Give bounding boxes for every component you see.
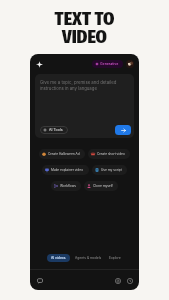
button[interactable]: Create Halloween Ad bbox=[39, 149, 85, 159]
staticText: Create Halloween Ad bbox=[48, 152, 80, 156]
staticText: AI videos bbox=[51, 256, 66, 260]
button[interactable]: Profile bbox=[126, 60, 134, 68]
button[interactable]: Chat bbox=[34, 275, 45, 286]
staticText: Explore bbox=[109, 256, 121, 260]
button[interactable]: Likes bbox=[112, 275, 123, 286]
button[interactable]: Workflows bbox=[51, 181, 81, 191]
button[interactable]: Assistant bbox=[34, 59, 45, 70]
staticText: Generative bbox=[100, 62, 119, 66]
staticText: Workflows bbox=[60, 184, 76, 188]
staticText: Give me a topic, premise and detailed in… bbox=[40, 80, 117, 91]
staticText: TEXT TO VIDEO bbox=[0, 8, 169, 48]
button[interactable]: History bbox=[124, 275, 135, 286]
button[interactable]: AI videos bbox=[47, 254, 70, 262]
staticText: Agents & models bbox=[75, 256, 102, 260]
button[interactable]: Clone myself bbox=[84, 181, 118, 191]
button[interactable]: AI Tools bbox=[40, 126, 68, 134]
button[interactable]: Explore bbox=[107, 254, 123, 262]
staticText: Use my script bbox=[101, 168, 122, 172]
button[interactable]: Create short video bbox=[88, 149, 130, 159]
staticText: AI Tools bbox=[49, 128, 63, 132]
button[interactable]: Agents & models bbox=[73, 254, 104, 262]
staticText: Make explainer video bbox=[51, 168, 84, 172]
button[interactable]: Make explainer video bbox=[42, 165, 89, 175]
button[interactable]: Use my script bbox=[92, 165, 127, 175]
staticText: Clone myself bbox=[93, 184, 113, 188]
staticText: Create short video bbox=[97, 152, 125, 156]
button[interactable]: Send bbox=[115, 125, 131, 135]
button[interactable]: Generative bbox=[92, 60, 123, 68]
